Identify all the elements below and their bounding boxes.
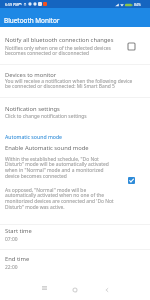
staticText: Automatic sound mode bbox=[5, 133, 63, 140]
staticText: Start time bbox=[5, 227, 32, 235]
button[interactable]: Start time bbox=[0, 225, 150, 249]
button[interactable]: Devices to monitor bbox=[0, 66, 150, 97]
button[interactable]: Disabled checkbox bbox=[124, 39, 139, 54]
button[interactable]: Enabled checkbox bbox=[124, 173, 139, 188]
staticText: Notification settings bbox=[5, 105, 60, 113]
staticText: As opposed, "Normal" mode will be automa… bbox=[5, 187, 117, 211]
staticText: End time bbox=[5, 255, 30, 263]
staticText: Within the established schedule, "Do Not… bbox=[5, 156, 117, 180]
staticText: Enable Automatic sound mode bbox=[5, 144, 89, 152]
staticText: 6:59 PM bbox=[5, 2, 19, 7]
button[interactable]: Enable Automatic sound mode bbox=[0, 142, 150, 222]
button[interactable]: Notification settings bbox=[0, 100, 150, 124]
staticText: Bluetooth Monitor bbox=[4, 16, 60, 25]
button[interactable]: End time bbox=[0, 253, 150, 277]
staticText: 07:00 bbox=[5, 236, 18, 243]
button[interactable]: Recents bbox=[38, 282, 50, 294]
staticText: Click to change notification settings bbox=[5, 113, 87, 120]
staticText: You will receive a notification when the… bbox=[5, 78, 135, 90]
staticText: Notifies only when one of the selected d… bbox=[5, 45, 117, 57]
staticText: Notify all bluetooth connection changes bbox=[5, 36, 114, 44]
staticText: 84% bbox=[134, 2, 141, 7]
staticText: Devices to monitor bbox=[5, 71, 57, 79]
button[interactable]: Back bbox=[101, 284, 113, 296]
button[interactable]: Home bbox=[69, 284, 81, 296]
button[interactable]: Notify all bluetooth connection changes bbox=[0, 31, 150, 63]
staticText: 22:00 bbox=[5, 264, 18, 271]
